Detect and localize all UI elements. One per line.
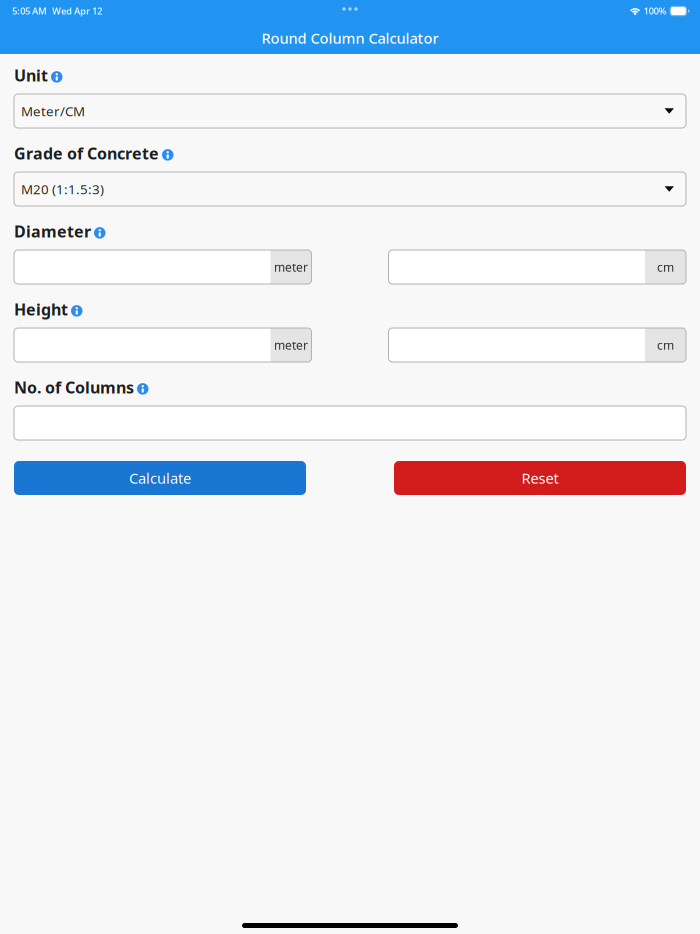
button[interactable]: Reset	[394, 461, 686, 495]
staticText: Diameter	[14, 221, 91, 242]
staticText: 100%	[644, 5, 667, 17]
staticText: No. of Columns	[14, 377, 134, 398]
button[interactable]: About Diameter	[94, 224, 105, 239]
staticText: M20 (1:1.5:3)	[21, 180, 104, 198]
staticText: Round Column Calculator	[261, 28, 438, 48]
staticText: Height	[14, 299, 68, 320]
button[interactable]: Number of columns	[14, 406, 686, 440]
button[interactable]: About Grade of Concrete	[162, 146, 173, 161]
staticText: meter	[274, 259, 308, 275]
button[interactable]: Value in cm	[388, 328, 686, 362]
button[interactable]: Value in meter	[14, 328, 311, 362]
button[interactable]: Meter/CM	[14, 94, 686, 128]
staticText: Unit	[14, 65, 48, 86]
button[interactable]: Value in meter	[14, 250, 311, 284]
staticText: Grade of Concrete	[14, 143, 159, 164]
button[interactable]: About No. of Columns	[137, 380, 148, 395]
staticText: Calculate	[129, 468, 191, 488]
button[interactable]: Value in cm	[388, 250, 686, 284]
button[interactable]: About Height	[71, 302, 82, 317]
staticText: cm	[657, 259, 674, 275]
staticText: Wed Apr 12	[52, 5, 102, 17]
button[interactable]: Calculate	[14, 461, 306, 495]
button[interactable]: M20 (1:1.5:3)	[14, 172, 686, 206]
staticText: cm	[657, 337, 674, 353]
staticText: meter	[274, 337, 308, 353]
staticText: 5:05 AM	[12, 5, 47, 17]
button[interactable]: About Unit	[51, 68, 62, 83]
staticText: Meter/CM	[21, 102, 85, 120]
staticText: Reset	[521, 468, 558, 488]
